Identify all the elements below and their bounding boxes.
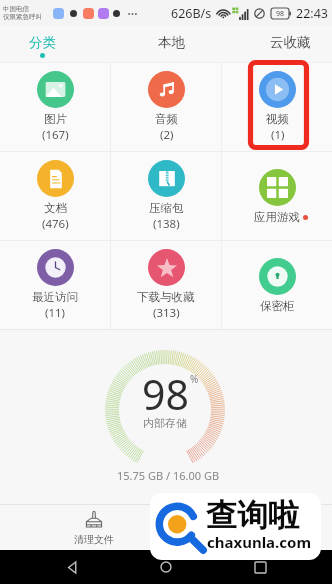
staticText: 内部存储: [143, 416, 187, 430]
staticText: chaxunla.com: [207, 532, 312, 552]
staticText: 清理文件: [74, 533, 114, 546]
button[interactable]: 压缩包: [111, 152, 221, 240]
staticText: 云收藏: [270, 34, 311, 51]
staticText: 22:43: [296, 5, 328, 22]
staticText: 中国电信: [3, 5, 29, 13]
button[interactable]: 清理文件: [69, 510, 119, 546]
staticText: (138): [153, 216, 180, 232]
staticText: 保密柜: [260, 299, 295, 313]
staticText: 98: [276, 9, 285, 19]
button[interactable]: 保密柜: [222, 241, 332, 329]
staticText: 626B/s: [171, 5, 212, 22]
staticText: (11): [45, 305, 66, 321]
button[interactable]: 云收藏: [258, 26, 323, 63]
staticText: 压缩包: [149, 201, 184, 215]
button[interactable]: 分类: [17, 26, 68, 63]
button[interactable]: 图片: [0, 63, 110, 151]
staticText: 最近访问: [32, 290, 78, 304]
button[interactable]: 本地: [139, 26, 204, 63]
staticText: (1): [271, 127, 285, 143]
button[interactable]: 视频: [222, 63, 332, 151]
button[interactable]: Back: [50, 550, 94, 584]
staticText: 98: [142, 366, 189, 422]
staticText: 查询啦: [206, 496, 299, 535]
staticText: 应用游戏: [254, 210, 300, 224]
staticText: 图片: [44, 112, 67, 126]
button[interactable]: 文档: [0, 152, 110, 240]
staticText: (2): [160, 127, 174, 143]
button[interactable]: 最近访问: [0, 241, 110, 329]
staticText: 下载与收藏: [137, 290, 195, 304]
staticText: 本地: [158, 34, 185, 51]
staticText: 视频: [266, 112, 289, 126]
staticText: 文档: [44, 201, 67, 215]
staticText: 分类: [29, 34, 56, 51]
button[interactable]: 应用游戏: [222, 152, 332, 240]
button[interactable]: Home: [144, 550, 188, 584]
staticText: 音频: [155, 112, 178, 126]
staticText: (167): [42, 127, 69, 143]
button[interactable]: 下载与收藏: [111, 241, 221, 329]
button[interactable]: Recents: [238, 550, 282, 584]
staticText: %: [190, 372, 199, 386]
staticText: 15.75 GB / 16.00 GB: [117, 468, 220, 483]
staticText: 仅限紧急呼叫: [3, 13, 42, 21]
staticText: (313): [153, 305, 180, 321]
button[interactable]: 音频: [111, 63, 221, 151]
staticText: (476): [42, 216, 69, 232]
